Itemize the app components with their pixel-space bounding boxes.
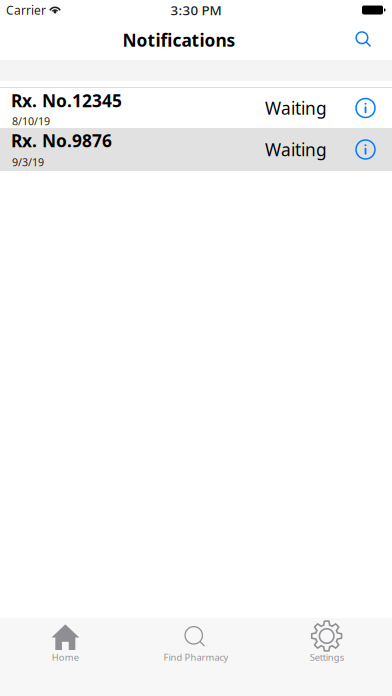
button[interactable]: Search bbox=[341, 21, 392, 59]
staticText: Rx. No.9876 bbox=[11, 129, 112, 152]
staticText: Find Pharmacy bbox=[163, 651, 228, 663]
staticText: 9/3/19 bbox=[12, 155, 44, 169]
button[interactable]: Rx. No.12345 bbox=[0, 88, 392, 128]
staticText: 8/10/19 bbox=[12, 114, 50, 128]
button[interactable]: Home bbox=[0, 618, 131, 696]
staticText: Notifications bbox=[122, 28, 235, 51]
staticText: Carrier bbox=[6, 2, 46, 18]
staticText: Home bbox=[52, 651, 79, 663]
button[interactable]: Rx. No.9876 bbox=[0, 128, 392, 171]
staticText: Settings bbox=[310, 651, 344, 663]
button[interactable]: Find Pharmacy bbox=[131, 618, 261, 696]
staticText: Waiting bbox=[265, 138, 327, 161]
staticText: 3:30 PM bbox=[170, 1, 221, 19]
button[interactable]: Settings bbox=[261, 618, 392, 696]
staticText: Rx. No.12345 bbox=[11, 89, 122, 112]
staticText: Waiting bbox=[265, 96, 327, 119]
